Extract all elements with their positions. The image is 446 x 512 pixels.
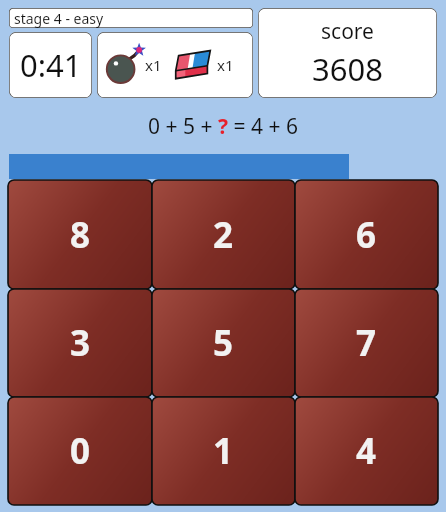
button[interactable]: 8 bbox=[8, 180, 152, 289]
staticText: 7 bbox=[356, 319, 377, 367]
other: Bomb item bbox=[103, 44, 145, 86]
button[interactable]: stage 4 - easy bbox=[9, 8, 253, 28]
staticText: 5 bbox=[213, 319, 234, 367]
staticText: stage 4 - easy bbox=[14, 9, 104, 28]
button[interactable]: 7 bbox=[295, 289, 438, 397]
button[interactable]: 0 bbox=[8, 397, 152, 505]
button[interactable]: 2 bbox=[152, 180, 295, 289]
staticText: 1 bbox=[213, 427, 234, 475]
staticText: x1 bbox=[145, 55, 162, 75]
staticText: 0:41 bbox=[20, 44, 82, 86]
staticText: 8 bbox=[70, 211, 91, 259]
button[interactable]: Bomb item bbox=[97, 32, 253, 98]
button[interactable]: 3 bbox=[8, 289, 152, 397]
staticText: score bbox=[321, 17, 374, 46]
button[interactable]: 6 bbox=[295, 180, 438, 289]
staticText: x1 bbox=[217, 55, 234, 75]
button[interactable]: 5 bbox=[152, 289, 295, 397]
staticText: 6 bbox=[356, 211, 377, 259]
button[interactable]: score bbox=[258, 8, 437, 98]
staticText: 3 bbox=[70, 319, 91, 367]
staticText: 2 bbox=[213, 211, 234, 259]
staticText: 3608 bbox=[312, 48, 383, 90]
button[interactable]: 0:41 bbox=[9, 32, 92, 98]
staticText: 4 bbox=[356, 427, 377, 475]
button[interactable]: 1 bbox=[152, 397, 295, 505]
button[interactable]: 4 bbox=[295, 397, 438, 505]
staticText: 0 bbox=[70, 427, 91, 475]
other: Eraser item bbox=[169, 47, 217, 83]
staticText: 0 + 5 + ? = 4 + 6 bbox=[148, 112, 298, 141]
